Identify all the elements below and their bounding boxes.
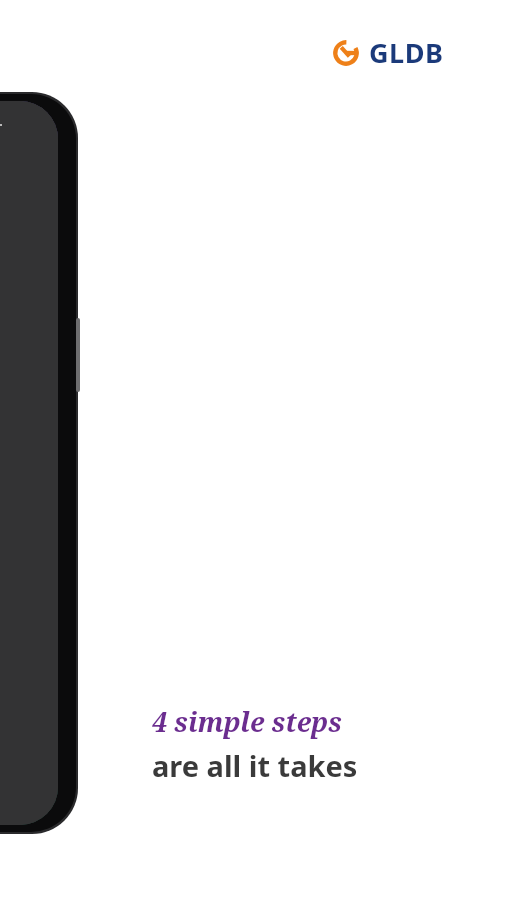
staticText: are all it takes [152, 746, 358, 785]
staticText: GLDB [369, 34, 444, 71]
button[interactable]: GLDB logo [330, 32, 446, 73]
button[interactable]: Power button [76, 318, 80, 392]
staticText: 4 simple steps [152, 703, 342, 740]
